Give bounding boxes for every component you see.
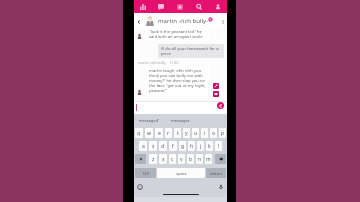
button[interactable]: Back [135,18,142,25]
button[interactable]: k [206,141,213,151]
staticText: 123 [142,171,149,176]
staticText: martin laugh 'ohh ohh you think you can … [149,68,206,93]
button[interactable]: Home [170,0,189,13]
button[interactable]: j [197,141,204,151]
staticText: h [190,143,194,150]
staticText: n [198,156,202,163]
button[interactable]: w [145,128,153,138]
staticText: d [161,143,165,150]
staticText: u [194,130,198,137]
staticText: "look it the peasant kid" he said with a… [149,29,205,39]
button[interactable]: s [149,141,157,151]
button[interactable]: z [149,154,157,164]
staticText: b [189,156,193,163]
staticText: martin -rich bully- 11:40 [138,60,179,65]
staticText: w [147,130,151,137]
staticText: x [162,156,165,163]
staticText: t [177,130,179,137]
staticText: p [221,130,225,137]
staticText: m [206,156,211,163]
staticText: space [176,171,187,176]
button[interactable]: y [183,128,190,138]
button[interactable]: v [178,154,185,164]
button[interactable]: f [169,141,177,151]
staticText: r [167,130,170,137]
button[interactable]: b [187,154,194,164]
button[interactable]: More options [219,18,226,25]
button[interactable]: Profile [208,0,227,13]
button[interactable]: c [169,154,176,164]
button[interactable]: return [206,168,226,178]
button[interactable]: a [139,141,147,151]
staticText: k [208,143,211,150]
staticText: q [137,130,141,137]
button[interactable]: 123 [135,168,156,178]
staticText: c [171,156,174,163]
button[interactable]: martin laugh 'ohh ohh you think you can … [145,66,210,95]
button[interactable]: Regenerate reply [217,102,224,109]
staticText: e [158,130,161,137]
button[interactable]: i [201,128,208,138]
button[interactable]: h [188,141,195,151]
button[interactable]: t [174,128,181,138]
button[interactable]: ill do all your homework for a price [158,44,224,58]
staticText: g [181,143,185,150]
button[interactable]: Backspace [215,154,226,164]
button[interactable]: Expand [213,83,219,89]
button[interactable]: g [179,141,186,151]
staticText: return [210,171,222,176]
staticText: martin -rich bully- [158,17,209,25]
button[interactable]: q [135,128,143,138]
staticText: messages [171,118,190,123]
button[interactable]: Emoji [137,184,143,190]
button[interactable]: x [159,154,167,164]
button[interactable]: Shift [135,154,146,164]
button[interactable]: o [210,128,217,138]
staticText: l [218,143,220,150]
staticText: o [212,130,216,137]
staticText: v [180,156,183,163]
button[interactable]: "look it the peasant kid" he said with a… [145,27,209,41]
button[interactable]: space [157,168,205,178]
button[interactable]: Voice input [218,184,224,190]
staticText: y [185,130,188,137]
staticText: j [200,143,202,150]
staticText: 'messaged' [138,118,159,123]
button[interactable]: Chats [152,0,170,13]
button[interactable]: d [159,141,167,151]
staticText: a [142,143,145,150]
staticText: f [172,143,174,150]
staticText: z [152,156,155,163]
button[interactable]: r [165,128,172,138]
button[interactable]: m [205,154,212,164]
staticText: ill do all your homework for a price [161,46,221,56]
staticText: i [204,130,206,137]
button[interactable]: Save [213,91,219,97]
button[interactable]: l [215,141,222,151]
button[interactable]: n [196,154,203,164]
button[interactable]: Search [189,0,208,13]
button[interactable]: Stats [134,0,152,13]
button[interactable]: p [219,128,226,138]
staticText: s [152,143,155,150]
button[interactable]: e [155,128,163,138]
button[interactable]: u [192,128,199,138]
